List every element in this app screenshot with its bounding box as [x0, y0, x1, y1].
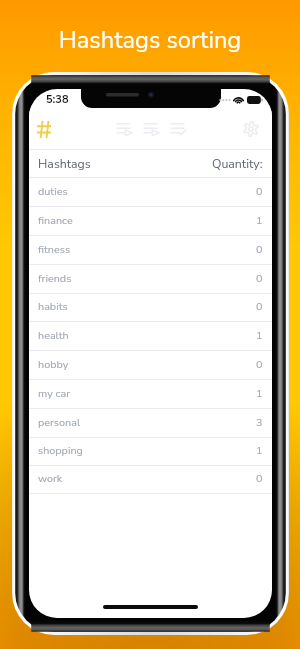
staticText: hobby	[38, 357, 69, 372]
staticText: Quantity:	[212, 156, 263, 173]
staticText: 3	[256, 415, 263, 430]
button[interactable]: my car	[29, 380, 272, 409]
staticText: Hashtags sorting	[0, 24, 300, 56]
staticText: 1	[256, 213, 263, 228]
staticText: 0	[256, 184, 263, 199]
staticText: personal	[38, 415, 81, 430]
staticText: habits	[38, 299, 68, 314]
staticText: 5:38	[46, 92, 69, 107]
button[interactable]: shopping	[29, 438, 272, 466]
staticText: Hashtags	[38, 156, 91, 173]
button[interactable]: health	[29, 322, 272, 351]
button[interactable]: finance	[29, 207, 272, 236]
button[interactable]: Settings	[238, 116, 264, 142]
button[interactable]: duties	[29, 178, 272, 207]
staticText: 1	[256, 386, 263, 401]
staticText: fitness	[38, 242, 71, 257]
button[interactable]: hobby	[29, 351, 272, 380]
staticText: duties	[38, 184, 68, 199]
staticText: work	[38, 471, 63, 486]
staticText: 0	[256, 299, 263, 314]
button[interactable]: Sort by name ascending	[116, 116, 132, 142]
button[interactable]: friends	[29, 265, 272, 294]
staticText: health	[38, 328, 69, 343]
staticText: 0	[256, 271, 263, 286]
staticText: 1	[256, 328, 263, 343]
button[interactable]: Sort by selection	[170, 116, 186, 142]
staticText: 0	[256, 471, 263, 486]
staticText: 1	[256, 443, 263, 458]
button[interactable]: work	[29, 466, 272, 494]
staticText: friends	[38, 271, 72, 286]
staticText: shopping	[38, 443, 83, 458]
button[interactable]: Sort by quantity	[143, 116, 159, 142]
staticText: 0	[256, 242, 263, 257]
staticText: 0	[256, 357, 263, 372]
button[interactable]: Hashtags	[31, 116, 57, 142]
button[interactable]: personal	[29, 409, 272, 438]
button[interactable]: fitness	[29, 236, 272, 265]
staticText: finance	[38, 213, 73, 228]
button[interactable]: habits	[29, 294, 272, 322]
staticText: my car	[38, 386, 71, 401]
